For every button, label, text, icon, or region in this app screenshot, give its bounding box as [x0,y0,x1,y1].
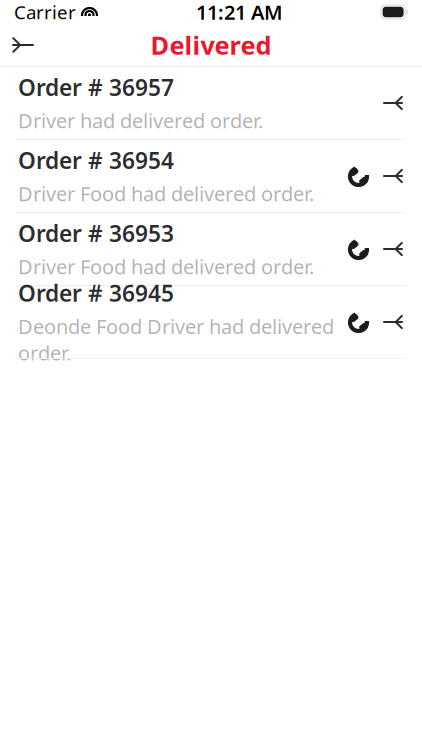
staticText: Driver Food had delivered order. [18,253,314,280]
staticText: Order # 36957 [18,72,174,102]
staticText: Deonde Food Driver had delivered order. [18,313,334,366]
staticText: Carrier [14,0,76,24]
button[interactable]: Order # 36957 [0,67,422,139]
button[interactable]: Order # 36945 [0,286,422,358]
button[interactable]: Order # 36953 [0,213,422,285]
staticText: Driver had delivered order. [18,107,263,134]
staticText: Delivered [150,28,271,62]
staticText: Order # 36954 [18,145,174,175]
staticText: 11:21 AM [196,0,283,25]
staticText: Order # 36953 [18,218,174,248]
staticText: Driver Food had delivered order. [18,180,314,207]
staticText: Order # 36945 [18,278,174,308]
button[interactable]: Back [0,24,46,66]
button[interactable]: Order # 36954 [0,140,422,212]
